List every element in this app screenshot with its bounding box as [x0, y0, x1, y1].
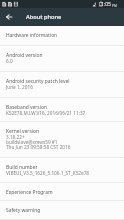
staticText: Kernel version	[6, 128, 39, 135]
staticText: Hardware information	[6, 32, 58, 39]
staticText: 1:05	[101, 1, 111, 8]
staticText: Android version	[6, 52, 43, 59]
button[interactable]: Baseband version	[0, 98, 124, 122]
staticText: Build number	[6, 164, 38, 171]
staticText: Android security patch level	[6, 78, 70, 85]
button[interactable]: Build number	[0, 158, 124, 183]
button[interactable]: Hardware information	[0, 26, 124, 46]
staticText: Baseband version	[6, 104, 47, 111]
button[interactable]: Kernel version	[0, 122, 124, 158]
staticText: 3.18.22+ buildslave@xmws59 #1 Thu Jun 23…	[6, 134, 71, 150]
staticText: 6.0	[6, 58, 13, 64]
button[interactable]: Back	[0, 8, 18, 26]
staticText: About phone	[26, 13, 62, 21]
button[interactable]: Safety warning	[0, 201, 124, 220]
button[interactable]: Android version	[0, 46, 124, 72]
staticText: Experience Program	[6, 189, 53, 196]
staticText: VIBEUI_V3.5_1626_5.106.1_ST_K52e78	[6, 170, 90, 176]
staticText: PM	[112, 3, 118, 8]
staticText: June 1, 2016	[6, 84, 33, 90]
staticText: K52E78.M.LW.V16, 2016/06/21 11:37	[6, 110, 86, 116]
button[interactable]: Android security patch level	[0, 72, 124, 98]
button[interactable]: Experience Program	[0, 183, 124, 201]
staticText: Safety warning	[6, 207, 41, 214]
